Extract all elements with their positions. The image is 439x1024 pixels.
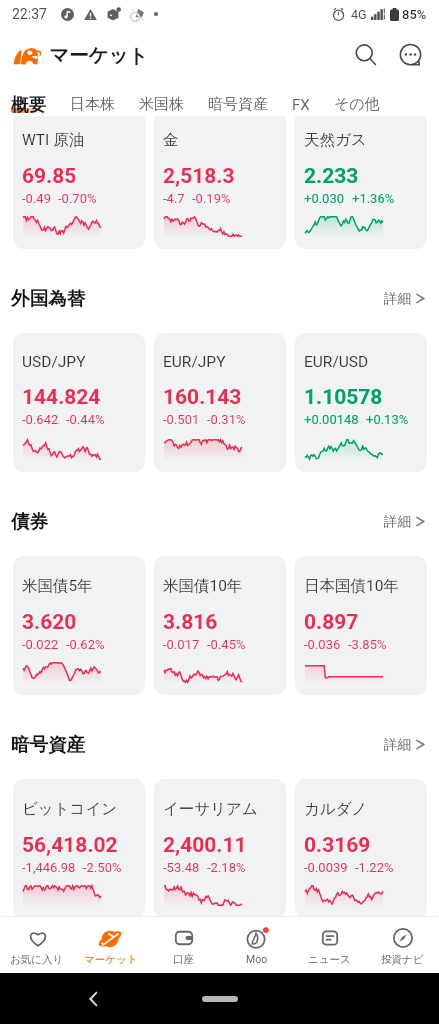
staticText: カルダノ [304, 799, 368, 819]
button[interactable]: 詳細 [381, 508, 428, 535]
staticText: +1.36% [352, 191, 395, 206]
button[interactable]: Messages [388, 33, 432, 77]
button[interactable]: その他 [322, 93, 392, 116]
button[interactable]: ビットコイン [13, 779, 145, 916]
button[interactable]: EUR/USD [295, 333, 427, 472]
staticText: 85% [402, 7, 427, 22]
staticText: 投資ナビ [381, 953, 424, 966]
staticText: EUR/JPY [163, 353, 226, 371]
button[interactable]: USD/JPY [13, 333, 145, 472]
staticText: -0.19% [192, 191, 231, 206]
staticText: 2,400.11 [163, 833, 247, 858]
staticText: 69.85 [22, 164, 77, 189]
other: Back [84, 989, 104, 1009]
staticText: -1,446.98 [22, 860, 76, 875]
staticText: +0.030 [304, 191, 345, 206]
staticText: 暗号資産 [11, 733, 85, 756]
staticText: -4.7 [163, 191, 185, 206]
button[interactable]: 金 [154, 116, 286, 249]
button[interactable]: 米国債10年 [154, 556, 286, 695]
staticText: -3.85% [348, 637, 387, 652]
button[interactable]: 詳細 [381, 285, 428, 312]
staticText: 天然ガス [304, 130, 367, 150]
button[interactable]: Search [344, 33, 388, 77]
staticText: 56,418.02 [22, 833, 118, 858]
staticText: 米国債10年 [163, 576, 243, 596]
staticText: -0.70% [58, 191, 97, 206]
staticText: 暗号資産 [208, 95, 268, 114]
staticText: 債券 [11, 510, 48, 533]
staticText: 詳細 [384, 513, 411, 530]
staticText: -0.31% [207, 412, 246, 427]
button[interactable]: 日本国債10年 [295, 556, 427, 695]
button[interactable]: 詳細 [381, 731, 428, 758]
staticText: お気に入り [10, 953, 64, 966]
button[interactable]: お気に入り [0, 917, 74, 973]
staticText: -0.642 [22, 412, 59, 427]
staticText: 概要 [11, 94, 46, 116]
staticText: Moo [246, 953, 268, 965]
button[interactable]: 天然ガス [295, 116, 427, 249]
staticText: 0.3169 [304, 833, 371, 858]
button[interactable]: 暗号資産 [196, 93, 280, 116]
staticText: 米国株 [139, 95, 184, 114]
button[interactable]: 口座 [147, 917, 220, 973]
staticText: -0.0039 [304, 860, 348, 875]
button[interactable]: イーサリアム [154, 779, 286, 916]
button[interactable]: FX [280, 93, 322, 116]
staticText: -0.017 [163, 637, 200, 652]
staticText: マーケット [84, 953, 138, 966]
staticText: その他 [334, 95, 380, 114]
staticText: 日本株 [70, 95, 115, 114]
staticText: 外国為替 [11, 287, 85, 310]
staticText: 22:37 [12, 6, 47, 22]
staticText: -0.036 [304, 637, 341, 652]
staticText: EUR/USD [304, 353, 369, 371]
staticText: 0.897 [304, 610, 359, 635]
staticText: -53.48 [163, 860, 200, 875]
staticText: 3.816 [163, 610, 218, 635]
staticText: 3.620 [22, 610, 77, 635]
staticText: USD/JPY [22, 353, 86, 371]
button[interactable]: マーケット [74, 917, 147, 973]
staticText: -0.62% [66, 637, 105, 652]
button[interactable]: 日本株 [58, 93, 127, 116]
button[interactable]: 概要 [0, 93, 58, 116]
button[interactable]: Moo [220, 917, 293, 973]
staticText: マーケット [49, 43, 149, 68]
staticText: ニュース [308, 953, 351, 966]
staticText: -0.45% [207, 637, 246, 652]
button[interactable]: EUR/JPY [154, 333, 286, 472]
staticText: 詳細 [384, 290, 411, 307]
staticText: -0.44% [66, 412, 105, 427]
staticText: 金 [163, 130, 179, 150]
staticText: 144.824 [22, 385, 101, 410]
button[interactable]: WTI 原油 [13, 116, 145, 249]
staticText: 2.233 [304, 164, 359, 189]
staticText: -0.49 [22, 191, 51, 206]
staticText: 160.143 [163, 385, 242, 410]
staticText: 詳細 [384, 736, 411, 753]
button[interactable]: 米国株 [127, 93, 196, 116]
staticText: WTI 原油 [22, 130, 85, 150]
staticText: 口座 [173, 953, 194, 966]
button[interactable]: 投資ナビ [366, 917, 439, 973]
staticText: -0.501 [163, 412, 200, 427]
staticText: 日本国債10年 [304, 576, 399, 596]
staticText: +0.00148 [304, 412, 359, 427]
staticText: -1.22% [355, 860, 394, 875]
staticText: -0.022 [22, 637, 59, 652]
staticText: ビットコイン [22, 799, 118, 819]
button[interactable]: ニュース [293, 917, 366, 973]
staticText: -2.18% [207, 860, 246, 875]
button[interactable]: カルダノ [295, 779, 427, 916]
staticText: 米国債5年 [22, 576, 93, 596]
staticText: 2,518.3 [163, 164, 235, 189]
staticText: 4G [351, 7, 367, 22]
staticText: FX [292, 96, 310, 114]
staticText: +0.13% [366, 412, 409, 427]
button[interactable]: 米国債5年 [13, 556, 145, 695]
staticText: イーサリアム [163, 799, 258, 819]
staticText: -2.50% [83, 860, 122, 875]
staticText: 1.10578 [304, 385, 383, 410]
